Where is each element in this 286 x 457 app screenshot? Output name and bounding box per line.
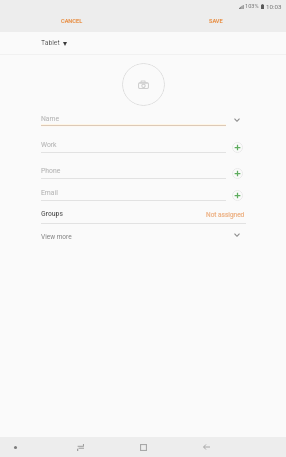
button[interactable]: Add photo [122,63,165,106]
button[interactable]: Expand [228,226,246,244]
button[interactable]: Add [229,165,245,181]
button[interactable] [0,108,286,125]
staticText: Groups [41,210,63,218]
staticText: CANCEL [61,18,83,25]
staticText: Phone [41,167,61,175]
staticText: 10:03 [266,3,282,10]
staticText: Email [41,189,58,197]
staticText: Name [41,115,60,123]
button[interactable]: Recent apps [70,437,91,457]
button[interactable]: Expand [228,111,246,129]
button[interactable] [0,156,286,178]
staticText: Not assigned [206,211,245,219]
button[interactable] [0,130,286,152]
button[interactable]: Home [133,437,154,457]
staticText: SAVE [209,18,223,25]
staticText: Tablet [41,39,60,47]
staticText: Work [41,141,57,149]
button[interactable]: Add [229,187,245,203]
button[interactable]: SAVE [188,12,243,30]
button[interactable] [0,226,286,248]
button[interactable]: Back [196,437,217,457]
button[interactable] [0,180,286,200]
button[interactable]: CANCEL [44,12,99,30]
button[interactable] [0,33,286,54]
button[interactable]: Hide navigation bar [7,439,24,456]
staticText: View more [41,233,72,241]
staticText: 103% [245,3,259,10]
button[interactable]: Add [229,139,245,155]
button[interactable] [0,202,286,223]
